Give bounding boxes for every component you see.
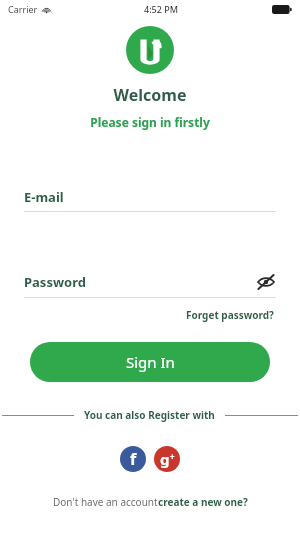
button[interactable]: E-mail <box>24 188 276 212</box>
button[interactable]: Forget password? <box>184 306 276 324</box>
staticText: Forget password? <box>186 308 274 322</box>
staticText: Please sign in firstly <box>0 114 300 130</box>
staticText: g <box>160 449 170 469</box>
button[interactable]: Toggle password visibility <box>256 272 276 292</box>
staticText: Welcome <box>0 84 300 106</box>
staticText: f <box>130 448 137 470</box>
staticText: E-mail <box>24 188 276 206</box>
staticText: + <box>170 451 175 462</box>
button[interactable]: Password <box>24 272 276 298</box>
button[interactable]: Sign In <box>30 342 270 382</box>
staticText: Don't have an account <box>53 495 158 509</box>
staticText: You can also Register with <box>84 408 215 422</box>
staticText: Password <box>24 273 256 291</box>
button[interactable]: Register with Facebook <box>120 446 146 472</box>
button[interactable]: Register with Google Plus <box>154 446 180 472</box>
staticText: create a new one? <box>158 495 248 509</box>
staticText: Carrier <box>8 3 38 15</box>
staticText: 4:52 PM <box>144 3 178 15</box>
staticText: Sign In <box>126 352 175 372</box>
button[interactable]: create a new one? <box>158 495 248 509</box>
